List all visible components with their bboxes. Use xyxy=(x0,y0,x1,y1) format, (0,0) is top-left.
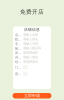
button[interactable]: 详细地址 xyxy=(15,55,49,59)
staticText: 联系人 xyxy=(15,37,21,41)
staticText: 请输入号码 xyxy=(23,42,38,46)
staticText: 经营类目 xyxy=(15,60,21,64)
staticText: 门头照片 xyxy=(15,65,21,69)
staticText: 验证码 xyxy=(15,46,21,50)
staticText: 请选择地区 xyxy=(23,51,38,55)
button[interactable]: 营业执照 xyxy=(15,70,49,77)
staticText: 所在地区 xyxy=(15,51,21,55)
staticText: 请输入验证码 xyxy=(23,46,41,50)
staticText: 请选择类目 xyxy=(23,60,38,64)
staticText: 店铺信息 xyxy=(24,27,40,32)
staticText: 请输入地址 xyxy=(23,55,38,59)
button[interactable]: 所在地区 xyxy=(15,50,49,55)
button[interactable]: 门头照片 xyxy=(15,64,49,70)
button[interactable]: 手机号 xyxy=(15,41,49,46)
button[interactable]: 验证码 xyxy=(15,46,49,50)
staticText: 请输入姓名 xyxy=(23,37,38,41)
button[interactable]: 联系人 xyxy=(15,37,49,41)
staticText: 店铺名称 xyxy=(15,33,21,37)
staticText: 营业执照 xyxy=(15,72,21,76)
staticText: 立即申请 xyxy=(24,93,40,98)
button[interactable]: 立即申请 xyxy=(12,93,51,98)
staticText: 详细地址 xyxy=(15,55,21,59)
button[interactable]: 经营类目 xyxy=(15,59,49,64)
button[interactable]: 店铺名称 xyxy=(15,32,49,37)
staticText: 手机号 xyxy=(15,42,21,46)
staticText: 免费开店 xyxy=(20,8,44,16)
staticText: 请输入名称 xyxy=(23,33,38,37)
